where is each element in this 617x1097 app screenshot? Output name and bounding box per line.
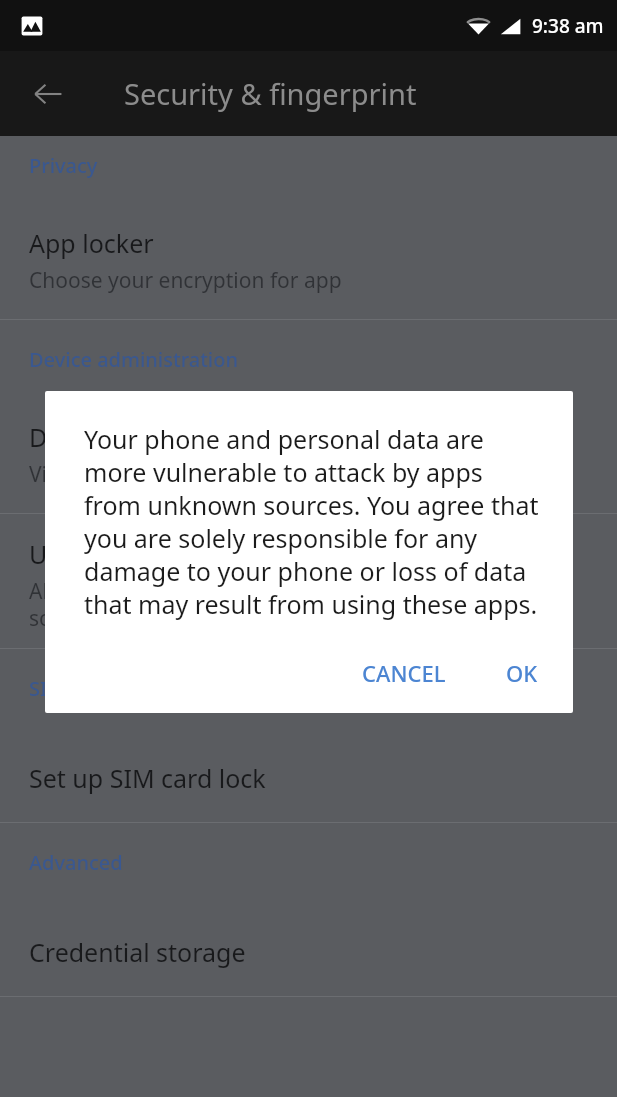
staticText: View or deactivate device admins [29, 460, 355, 489]
staticText: Privacy [29, 152, 98, 179]
staticText: Device administrators [29, 420, 286, 454]
staticText: Advanced [29, 849, 123, 876]
staticText: SIM card lock [29, 675, 157, 702]
staticText: Device administration [29, 346, 238, 373]
button[interactable]: OK [489, 643, 555, 703]
staticText: App locker [29, 226, 154, 260]
staticText: Allow installation of apps from unknown … [29, 577, 426, 632]
staticText: Security & fingerprint [124, 74, 417, 113]
staticText: 9:38 am [532, 13, 604, 39]
staticText: Unknown sources [29, 537, 239, 571]
staticText: Your phone and personal data are more vu… [84, 422, 543, 621]
staticText: OK [506, 658, 538, 688]
button[interactable]: Credential storage [0, 935, 617, 969]
staticText: CANCEL [362, 658, 446, 688]
staticText: Credential storage [29, 935, 246, 969]
button[interactable]: Device administrators [0, 420, 617, 489]
button[interactable]: App locker [0, 226, 617, 295]
button[interactable]: Back [20, 66, 76, 122]
staticText: Set up SIM card lock [29, 761, 266, 795]
button[interactable]: CANCEL [345, 643, 463, 703]
button[interactable]: Unknown sources [0, 537, 617, 632]
staticText: Choose your encryption for app [29, 266, 342, 295]
button[interactable]: Set up SIM card lock [0, 761, 617, 795]
